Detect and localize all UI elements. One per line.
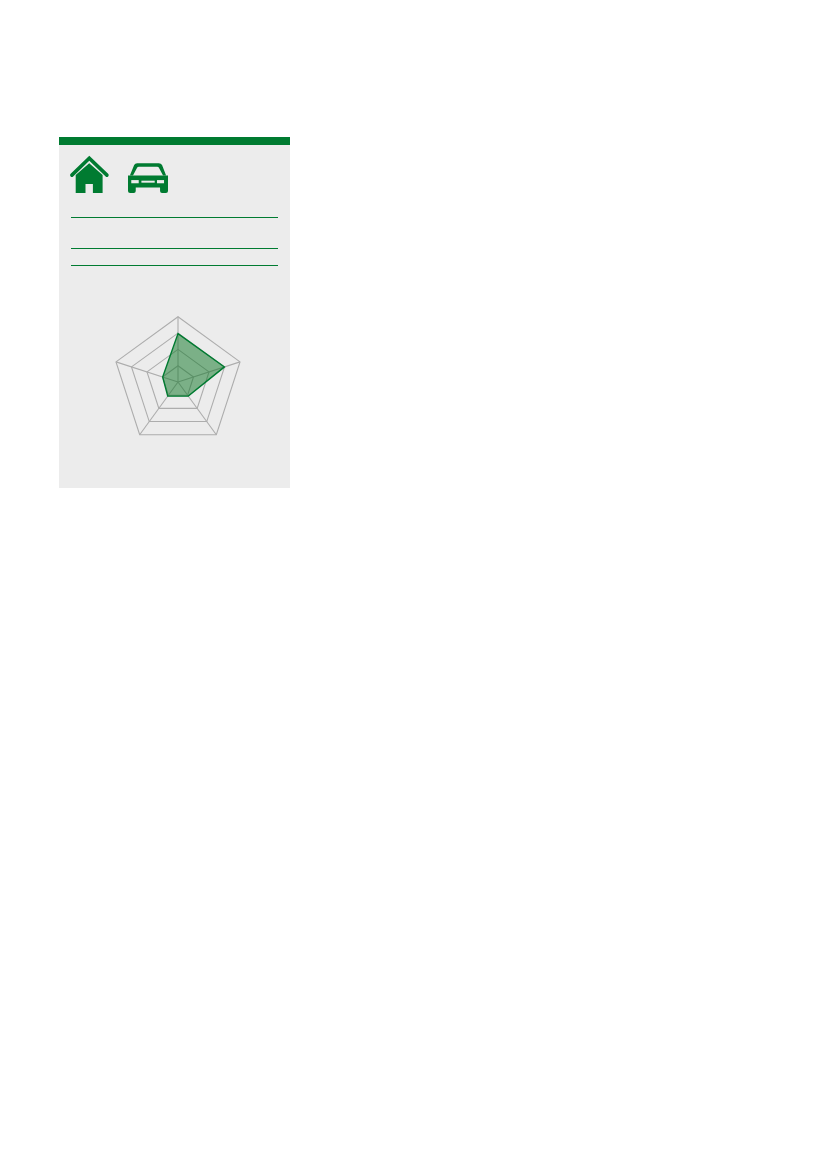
button[interactable]: Vehicle	[128, 163, 168, 193]
button[interactable]: Field	[71, 201, 278, 218]
button[interactable]: Field	[71, 232, 278, 249]
button[interactable]: Field	[71, 249, 278, 266]
button[interactable]: Home	[70, 156, 109, 193]
